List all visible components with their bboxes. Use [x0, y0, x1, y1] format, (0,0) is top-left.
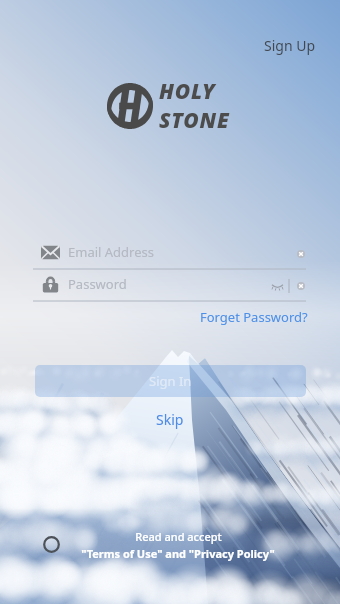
button[interactable]: Clear email: [292, 245, 310, 263]
staticText: Skip: [156, 410, 184, 429]
staticText: Sign Up: [264, 36, 316, 55]
staticText: Email Address: [68, 243, 154, 261]
staticText: HOLY: [159, 77, 216, 106]
button[interactable]: Read and accept: [75, 529, 281, 561]
staticText: Password: [68, 275, 127, 293]
button[interactable]: Accept terms: [39, 532, 63, 556]
button[interactable]: Sign In: [35, 365, 306, 397]
staticText: Read and accept: [135, 529, 222, 544]
button[interactable]: Email Address: [0, 238, 340, 270]
staticText: Forget Password?: [200, 308, 308, 326]
button[interactable]: Clear password: [292, 277, 310, 295]
button[interactable]: Sign Up: [258, 32, 322, 59]
button[interactable]: Password: [0, 270, 340, 302]
staticText: Sign In: [149, 372, 192, 390]
button[interactable]: Skip: [144, 408, 196, 431]
staticText: "Terms of Use" and "Privacy Policy": [81, 546, 275, 561]
button[interactable]: Show password: [268, 277, 286, 295]
button[interactable]: Forget Password?: [196, 306, 312, 328]
staticText: STONE: [159, 106, 230, 135]
